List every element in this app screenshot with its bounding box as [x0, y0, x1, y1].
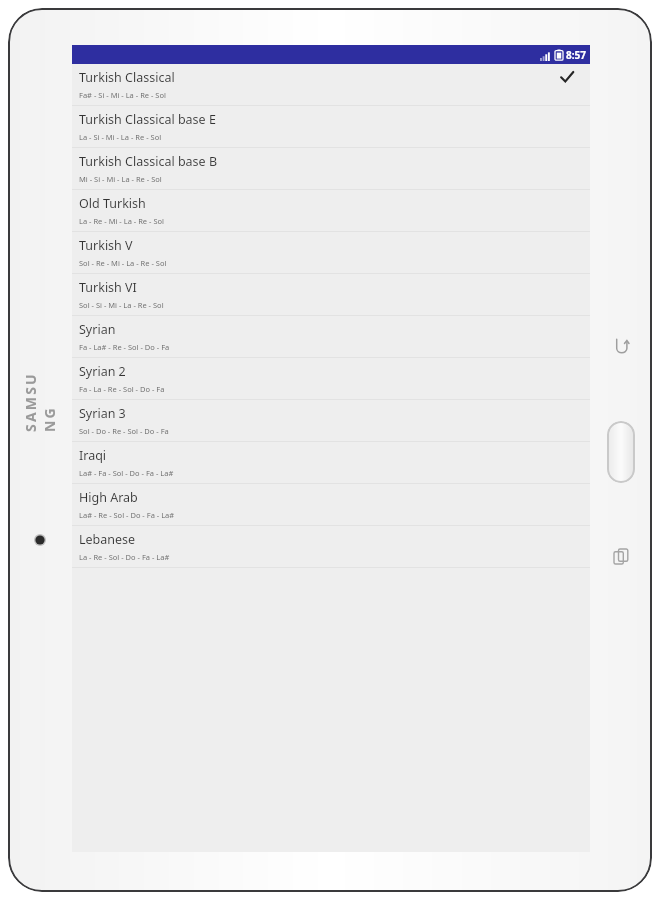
staticText: Fa - La - Re - Sol - Do - Fa: [79, 384, 165, 394]
button[interactable]: Turkish Classical base E: [72, 106, 590, 148]
staticText: Turkish V: [79, 237, 133, 254]
staticText: Fa - La# - Re - Sol - Do - Fa: [79, 342, 170, 352]
button[interactable]: Home: [607, 421, 635, 483]
staticText: Sol - Re - Mi - La - Re - Sol: [79, 258, 167, 268]
button[interactable]: Recent apps: [606, 541, 636, 571]
button[interactable]: Lebanese: [72, 526, 590, 568]
button[interactable]: Syrian 2: [72, 358, 590, 400]
staticText: Turkish Classical base E: [79, 111, 216, 128]
staticText: Turkish VI: [79, 279, 137, 296]
staticText: Lebanese: [79, 531, 136, 548]
button[interactable]: High Arab: [72, 484, 590, 526]
staticText: Syrian: [79, 321, 116, 338]
staticText: La# - Fa - Sol - Do - Fa - La#: [79, 468, 174, 478]
staticText: Sol - Do - Re - Sol - Do - Fa: [79, 426, 169, 436]
staticText: Syrian 3: [79, 405, 126, 422]
staticText: Fa# - Si - Mi - La - Re - Sol: [79, 90, 166, 100]
button[interactable]: Old Turkish: [72, 190, 590, 232]
button[interactable]: Turkish Classical base B: [72, 148, 590, 190]
staticText: SAMSUNG: [21, 368, 59, 432]
staticText: Turkish Classical base B: [79, 153, 218, 170]
staticText: Turkish Classical: [79, 69, 175, 86]
button[interactable]: Turkish VI: [72, 274, 590, 316]
staticText: 8:57: [566, 48, 586, 62]
staticText: Mi - Si - Mi - La - Re - Sol: [79, 174, 162, 184]
staticText: La# - Re - Sol - Do - Fa - La#: [79, 510, 175, 520]
button[interactable]: Back: [606, 331, 636, 361]
button[interactable]: Turkish Classical: [72, 64, 590, 106]
staticText: Syrian 2: [79, 363, 126, 380]
button[interactable]: Syrian 3: [72, 400, 590, 442]
staticText: La - Si - Mi - La - Re - Sol: [79, 132, 162, 142]
staticText: La - Re - Sol - Do - Fa - La#: [79, 552, 170, 562]
staticText: La - Re - Mi - La - Re - Sol: [79, 216, 164, 226]
staticText: Sol - Si - Mi - La - Re - Sol: [79, 300, 164, 310]
staticText: Iraqi: [79, 447, 107, 464]
button[interactable]: Iraqi: [72, 442, 590, 484]
button[interactable]: Turkish V: [72, 232, 590, 274]
button[interactable]: Syrian: [72, 316, 590, 358]
staticText: High Arab: [79, 489, 138, 506]
staticText: Old Turkish: [79, 195, 146, 212]
